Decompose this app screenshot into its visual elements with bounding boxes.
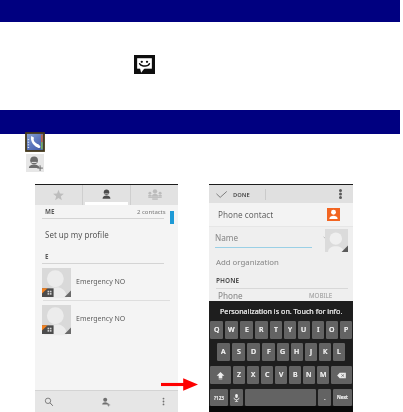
- staticText: H: [294, 347, 300, 357]
- button[interactable]: V: [275, 366, 287, 384]
- button[interactable]: F: [262, 343, 275, 361]
- button[interactable]: [230, 389, 243, 406]
- button[interactable]: Add contact: [62, 391, 149, 412]
- button[interactable]: K: [319, 343, 331, 361]
- staticText: Emergency NO: [76, 314, 126, 324]
- staticText: N: [306, 370, 312, 380]
- button[interactable]: R: [255, 321, 268, 339]
- button[interactable]: G: [277, 343, 289, 361]
- other: arrow: [161, 378, 198, 391]
- staticText: V: [279, 370, 284, 380]
- staticText: F: [267, 347, 271, 357]
- staticText: Set up my profile: [45, 229, 109, 240]
- staticText: E: [245, 325, 249, 335]
- button[interactable]: S: [232, 343, 245, 361]
- staticText: R: [259, 325, 264, 335]
- button[interactable]: O: [326, 321, 338, 339]
- staticText: O: [329, 325, 335, 335]
- other: Search: [44, 397, 54, 407]
- staticText: Phone: [218, 290, 243, 301]
- button[interactable]: E: [240, 321, 253, 339]
- button[interactable]: Q: [210, 321, 223, 339]
- staticText: E: [45, 252, 49, 261]
- button[interactable]: P: [340, 321, 352, 339]
- staticText: X: [251, 370, 256, 380]
- button[interactable]: More options: [327, 185, 353, 203]
- staticText: Name: [215, 232, 239, 243]
- other: Groups: [148, 188, 162, 202]
- button[interactable]: .: [318, 389, 331, 406]
- button[interactable]: J: [305, 343, 317, 361]
- other: Phone app: [26, 133, 44, 151]
- button[interactable]: [210, 366, 231, 384]
- staticText: Personalization is on. Touch for info.: [220, 306, 343, 316]
- staticText: Emergency NO: [76, 277, 126, 287]
- staticText: 2 contacts: [137, 208, 166, 216]
- button[interactable]: X: [247, 366, 259, 384]
- staticText: ?123: [214, 395, 224, 401]
- staticText: T: [274, 325, 278, 335]
- button[interactable]: Search: [35, 391, 62, 412]
- staticText: .: [324, 394, 326, 402]
- button[interactable]: Emergency NO: [35, 301, 178, 337]
- staticText: Phone contact: [218, 209, 274, 220]
- button[interactable]: Favorites: [35, 185, 82, 205]
- button[interactable]: Z: [233, 366, 245, 384]
- other: Add contact: [101, 397, 111, 407]
- button[interactable]: ?123: [210, 389, 228, 406]
- staticText: K: [323, 347, 328, 357]
- button[interactable]: B: [289, 366, 301, 384]
- staticText: Q: [214, 325, 220, 335]
- button[interactable]: Phone contact: [209, 203, 353, 226]
- staticText: PHONE: [216, 276, 240, 285]
- staticText: MOBILE: [309, 291, 333, 299]
- staticText: G: [280, 347, 286, 357]
- staticText: Add organization: [216, 257, 279, 268]
- button[interactable]: Emergency NO: [35, 264, 178, 300]
- button[interactable]: [331, 366, 352, 384]
- staticText: D: [251, 347, 257, 357]
- staticText: A: [221, 347, 226, 357]
- button[interactable]: H: [291, 343, 303, 361]
- staticText: DONE: [233, 191, 250, 199]
- button[interactable]: More options: [149, 391, 178, 412]
- button[interactable]: U: [298, 321, 310, 339]
- button[interactable]: L: [333, 343, 345, 361]
- staticText: I: [317, 325, 320, 335]
- button[interactable]: T: [270, 321, 282, 339]
- button[interactable]: DONE: [209, 190, 265, 199]
- staticText: P: [344, 325, 349, 335]
- button[interactable]: N: [303, 366, 315, 384]
- other: More options: [339, 189, 342, 199]
- other: Contacts: [101, 189, 112, 200]
- button[interactable]: C: [261, 366, 273, 384]
- staticText: S: [237, 347, 241, 357]
- other: More options: [159, 397, 168, 406]
- staticText: M: [320, 370, 327, 380]
- staticText: W: [228, 325, 235, 335]
- button[interactable]: Groups: [131, 185, 178, 205]
- other: Favorites: [53, 190, 64, 201]
- button[interactable]: Next: [333, 389, 352, 406]
- button[interactable]: D: [247, 343, 260, 361]
- button[interactable]: Contacts: [83, 185, 130, 205]
- staticText: L: [337, 347, 341, 357]
- button[interactable]: A: [217, 343, 230, 361]
- button[interactable]: W: [225, 321, 238, 339]
- staticText: Next: [337, 394, 348, 401]
- staticText: Z: [237, 370, 242, 380]
- staticText: B: [293, 370, 298, 380]
- staticText: U: [301, 325, 307, 335]
- button[interactable]: Y: [284, 321, 296, 339]
- button[interactable]: Set up my profile: [35, 219, 178, 250]
- other: Add contact: [26, 154, 44, 172]
- staticText: Y: [288, 325, 293, 335]
- button[interactable]: M: [317, 366, 329, 384]
- button[interactable]: Add organization: [209, 253, 353, 272]
- button[interactable]: I: [312, 321, 324, 339]
- other: Messages: [134, 55, 155, 74]
- staticText: C: [265, 370, 270, 380]
- staticText: J: [310, 347, 313, 357]
- staticText: ME: [45, 207, 55, 216]
